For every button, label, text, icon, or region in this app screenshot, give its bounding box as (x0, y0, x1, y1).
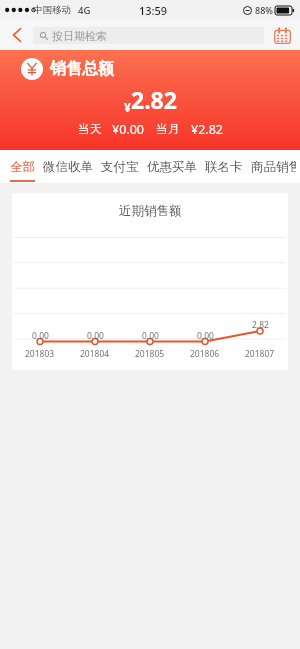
staticText: 按日期检索 (52, 29, 107, 43)
staticText: 4G (78, 4, 91, 17)
button[interactable]: 优惠买单 (143, 150, 201, 183)
staticText: 近期销售额 (119, 203, 182, 219)
button[interactable]: 微信收单 (39, 150, 97, 183)
staticText: ¥2.82 (191, 121, 223, 138)
staticText: 201804 (80, 348, 110, 360)
button[interactable]: 支付宝 (97, 150, 143, 183)
staticText: 全部 (10, 159, 35, 175)
button[interactable]: 商品销售 (247, 150, 300, 183)
staticText: 88% (255, 4, 273, 16)
staticText: 商品销售 (251, 159, 296, 175)
staticText: 联名卡 (205, 159, 243, 175)
button[interactable]: 全部 (6, 150, 39, 183)
button[interactable]: 按日期检索 (33, 27, 264, 44)
staticText: 销售总额 (50, 59, 114, 79)
staticText: 优惠买单 (147, 159, 197, 175)
staticText: 当天 (78, 121, 102, 136)
staticText: 0.00 (87, 330, 104, 342)
staticText: 0.00 (197, 330, 214, 342)
staticText: 201807 (245, 348, 275, 360)
staticText: 当月 (156, 121, 180, 136)
staticText: 0.00 (32, 330, 49, 342)
staticText: 201805 (135, 348, 165, 360)
staticText: 0.00 (142, 330, 159, 342)
button[interactable]: Calendar (264, 20, 300, 50)
button[interactable]: Back (0, 20, 33, 50)
staticText: 支付宝 (101, 159, 139, 175)
staticText: 2.82 (252, 319, 269, 331)
staticText: 13:59 (139, 3, 168, 18)
staticText: 201803 (25, 348, 55, 360)
button[interactable]: 联名卡 (201, 150, 247, 183)
staticText: 201806 (190, 348, 220, 360)
staticText: 2.82 (131, 84, 177, 115)
staticText: 中国移动 (33, 4, 71, 16)
staticText: ¥0.00 (112, 121, 144, 138)
staticText: 微信收单 (43, 159, 93, 175)
staticText: ¥ (124, 99, 131, 115)
